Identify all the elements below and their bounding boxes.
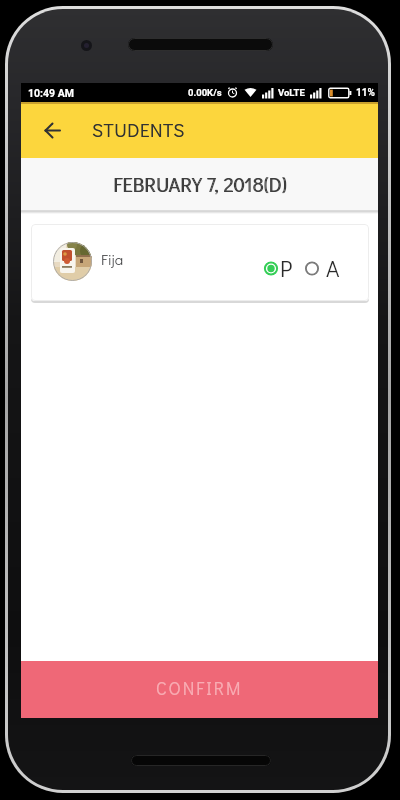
staticText: Fija (101, 249, 124, 269)
staticText: 10:49 AM (28, 87, 74, 99)
staticText: STUDENTS (92, 117, 185, 142)
staticText: A (326, 253, 340, 283)
button[interactable]: P (264, 250, 293, 286)
button[interactable]: Fija (31, 224, 369, 301)
button[interactable] (36, 114, 68, 146)
staticText: 0.00K/s (188, 87, 222, 98)
staticText: 11% (356, 87, 375, 99)
button[interactable]: CONFIRM (21, 661, 378, 718)
staticText: P (280, 253, 293, 283)
staticText: CONFIRM (156, 677, 243, 700)
staticText: VoLTE (278, 87, 305, 98)
staticText: FEBRUARY 7, 2018(D) (114, 172, 288, 198)
staticText: FEBRUARY 7, 2018(D) (113, 172, 287, 198)
button[interactable]: A (305, 250, 340, 286)
staticText: STUDENTS (92, 117, 185, 142)
